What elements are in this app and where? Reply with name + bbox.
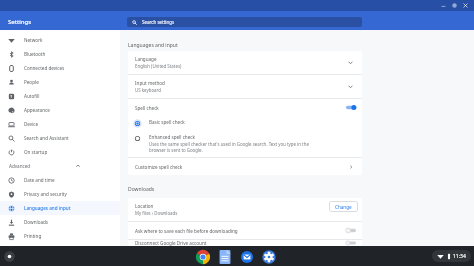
button[interactable]: Close <box>460 0 471 11</box>
button[interactable]: Maximize <box>449 0 460 11</box>
button[interactable]: Language <box>128 51 362 74</box>
staticText: Uses the same spell checker that's used … <box>149 141 309 154</box>
staticText: US keyboard <box>135 87 161 93</box>
staticText: On startup <box>24 149 48 155</box>
staticText: Enhanced spell check <box>149 134 195 140</box>
staticText: Customize spell check <box>135 164 183 170</box>
button[interactable]: Disconnect Google Drive account <box>128 240 362 246</box>
button[interactable]: Connected devices <box>0 61 120 75</box>
staticText: Change <box>335 204 352 210</box>
button[interactable]: Google Docs <box>217 249 233 265</box>
button[interactable]: Device <box>0 117 120 131</box>
staticText: 11:34 <box>453 253 466 260</box>
button[interactable]: On startup <box>0 145 120 159</box>
button[interactable]: Chrome <box>195 249 211 265</box>
staticText: English (United States) <box>135 63 182 69</box>
button[interactable]: Autofill <box>0 89 120 103</box>
button[interactable]: Status tray <box>432 250 471 262</box>
button[interactable]: Settings <box>261 249 277 265</box>
button[interactable]: Gmail <box>239 249 255 265</box>
staticText: Input method <box>135 80 165 86</box>
button[interactable]: Privacy and security <box>0 187 120 201</box>
staticText: Advanced <box>9 163 31 169</box>
button[interactable]: Date and time <box>0 173 120 187</box>
button[interactable]: Enhanced spell check <box>128 131 362 157</box>
staticText: People <box>24 79 39 85</box>
staticText: My files › Downloads <box>135 210 178 216</box>
staticText: Search and Assistant <box>24 135 69 141</box>
staticText: Languages and input <box>128 42 178 49</box>
staticText: Privacy and security <box>24 191 67 197</box>
button[interactable]: Input method <box>128 75 362 98</box>
staticText: Downloads <box>24 219 49 225</box>
button[interactable]: Launcher <box>3 250 16 263</box>
button[interactable]: Network <box>0 33 120 47</box>
button[interactable]: People <box>0 75 120 89</box>
staticText: Bluetooth <box>24 51 46 57</box>
button[interactable]: Customize spell check <box>128 158 362 175</box>
staticText: Network <box>24 37 43 43</box>
button[interactable]: Ask where to save each file before downl… <box>128 222 362 239</box>
button[interactable]: Downloads <box>0 215 120 229</box>
staticText: Disconnect Google Drive account <box>135 240 207 246</box>
button[interactable]: Search settings <box>127 17 362 27</box>
button[interactable]: Advanced <box>0 159 120 173</box>
button[interactable]: Search and Assistant <box>0 131 120 145</box>
button[interactable]: Printing <box>0 229 120 243</box>
staticText: Printing <box>24 233 42 239</box>
staticText: Spell check <box>135 105 159 111</box>
staticText: Ask where to save each file before downl… <box>135 228 238 234</box>
staticText: Search settings <box>142 19 175 25</box>
staticText: Downloads <box>128 186 155 193</box>
button[interactable]: Languages and input <box>0 201 120 215</box>
button[interactable]: Bluetooth <box>0 47 120 61</box>
staticText: Appearance <box>24 107 50 113</box>
button[interactable]: Basic spell check <box>128 116 362 131</box>
button[interactable]: Minimize <box>438 0 449 11</box>
staticText: Basic spell check <box>149 119 185 125</box>
staticText: Date and time <box>24 177 55 183</box>
staticText: Device <box>24 121 39 127</box>
staticText: Connected devices <box>24 65 65 71</box>
button[interactable]: Appearance <box>0 103 120 117</box>
staticText: Location <box>135 203 154 209</box>
button[interactable]: Change <box>329 201 358 212</box>
staticText: Languages and input <box>24 205 71 211</box>
staticText: Autofill <box>24 93 40 99</box>
button[interactable]: Spell check <box>128 99 362 116</box>
staticText: Settings <box>8 17 32 25</box>
staticText: Language <box>135 56 157 62</box>
